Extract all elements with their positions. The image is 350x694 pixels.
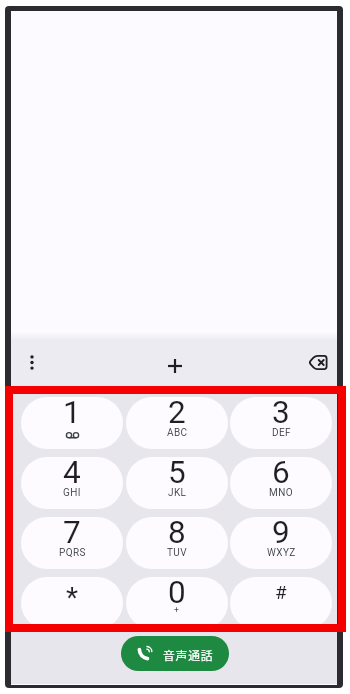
staticText: DEF — [272, 427, 291, 439]
staticText: 2 — [168, 397, 186, 431]
button[interactable] — [304, 348, 333, 377]
button[interactable]: 4 — [21, 457, 123, 509]
staticText: 3 — [272, 397, 290, 431]
staticText: PQRS — [59, 547, 86, 559]
staticText: 6 — [272, 457, 290, 491]
button[interactable]: 6 — [230, 457, 332, 509]
staticText: GHI — [63, 487, 81, 499]
staticText: 9 — [272, 517, 290, 551]
staticText: 音声通話 — [163, 646, 214, 663]
button[interactable] — [17, 348, 46, 377]
staticText: 7 — [63, 517, 81, 551]
button[interactable]: 8 — [126, 517, 228, 569]
staticText: TUV — [167, 547, 188, 559]
button[interactable] — [160, 351, 190, 381]
button[interactable]: 1 — [21, 397, 123, 449]
button[interactable]: 3 — [230, 397, 332, 449]
staticText: WXYZ — [267, 547, 296, 559]
button[interactable]: 7 — [21, 517, 123, 569]
staticText: 8 — [168, 517, 186, 551]
button[interactable]: 2 — [126, 397, 228, 449]
staticText: 1 — [63, 397, 81, 431]
staticText: ABC — [167, 427, 188, 439]
staticText: * — [66, 581, 79, 614]
staticText: # — [275, 581, 287, 603]
button[interactable]: # — [230, 577, 332, 629]
staticText: 5 — [168, 457, 186, 491]
button[interactable]: 5 — [126, 457, 228, 509]
button[interactable]: 0 — [126, 577, 228, 629]
staticText: 4 — [63, 457, 81, 491]
staticText: + — [174, 605, 180, 615]
staticText: JKL — [168, 487, 187, 499]
staticText: 0 — [168, 577, 186, 611]
button[interactable]: * — [21, 577, 123, 629]
button[interactable]: 9 — [230, 517, 332, 569]
staticText: MNO — [269, 487, 293, 499]
button[interactable]: 音声通話 — [121, 636, 229, 671]
